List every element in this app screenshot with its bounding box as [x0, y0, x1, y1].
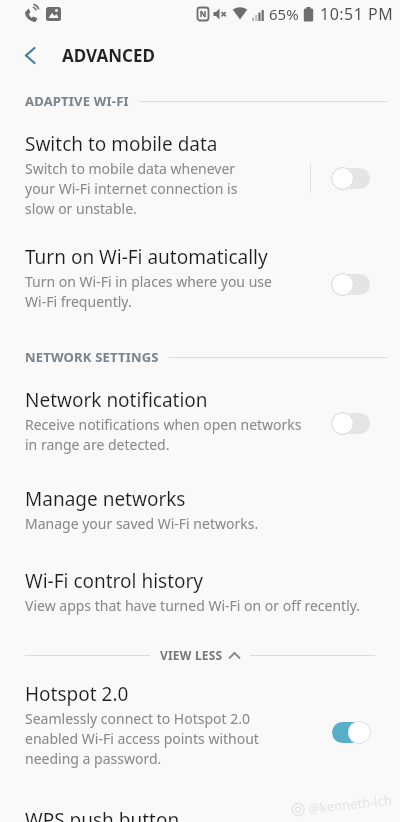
button[interactable]: [331, 720, 371, 744]
button[interactable]: Network notification: [0, 381, 400, 465]
staticText: Wi-Fi control history: [25, 568, 204, 594]
staticText: Manage your saved Wi-Fi networks.: [25, 514, 259, 533]
button[interactable]: [331, 166, 371, 190]
staticText: Turn on Wi-Fi automatically: [25, 244, 268, 270]
staticText: Seamlessly connect to Hotspot 2.0 enable…: [25, 709, 259, 768]
staticText: @kenneth-lch: [307, 791, 393, 817]
staticText: Turn on Wi-Fi in places where you use Wi…: [25, 272, 272, 311]
staticText: Manage networks: [25, 486, 186, 512]
staticText: 65%: [269, 4, 299, 24]
staticText: ADVANCED: [62, 44, 155, 67]
button[interactable]: Manage networks: [0, 465, 400, 560]
staticText: Receive notifications when open networks…: [25, 415, 302, 454]
staticText: Switch to mobile data whenever your Wi-F…: [25, 159, 238, 218]
button[interactable]: WPS push button: [0, 783, 400, 822]
staticText: 10:51 PM: [320, 3, 394, 25]
staticText: VIEW LESS: [160, 647, 223, 663]
button[interactable]: Turn on Wi-Fi automatically: [0, 235, 400, 333]
button[interactable]: [331, 272, 371, 296]
staticText: Hotspot 2.0: [25, 681, 129, 707]
staticText: WPS push button: [25, 807, 180, 822]
staticText: Switch to mobile data: [25, 131, 218, 157]
button[interactable]: [14, 39, 46, 71]
staticText: ADAPTIVE WI-FI: [25, 92, 129, 110]
button[interactable]: Wi-Fi control history: [0, 560, 400, 630]
button[interactable]: Hotspot 2.0: [0, 680, 400, 783]
staticText: Network notification: [25, 387, 208, 413]
button[interactable]: VIEW LESS: [25, 630, 375, 680]
button[interactable]: [331, 411, 371, 435]
staticText: NETWORK SETTINGS: [25, 348, 159, 366]
staticText: View apps that have turned Wi-Fi on or o…: [25, 596, 361, 615]
button[interactable]: Switch to mobile data: [0, 120, 400, 235]
